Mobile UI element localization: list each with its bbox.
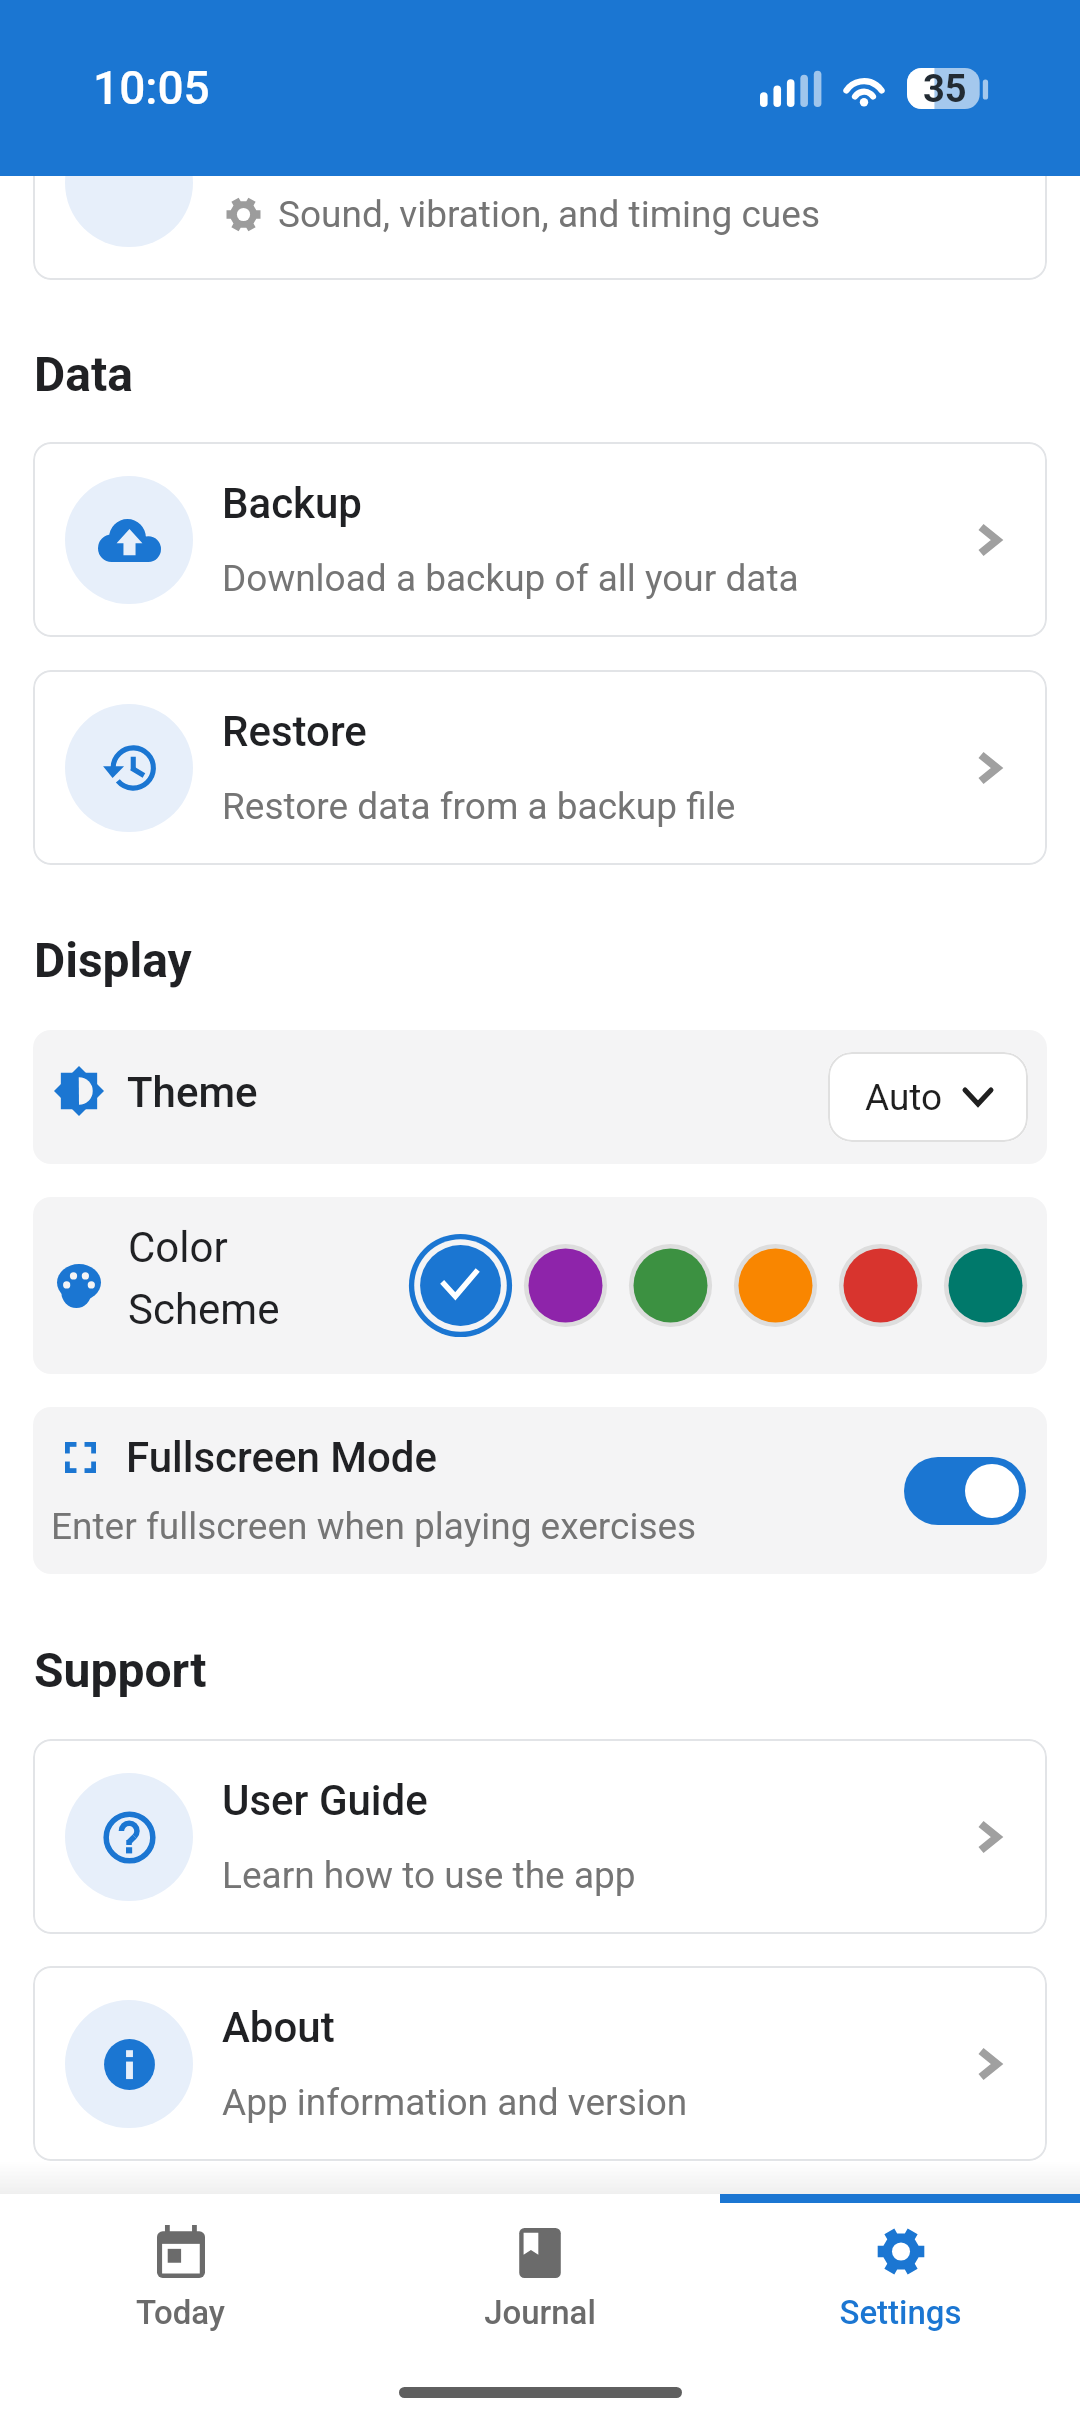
- staticText: Download a backup of all your data: [222, 557, 799, 600]
- staticText: Display: [34, 932, 192, 988]
- button[interactable]: Journal: [360, 2194, 720, 2424]
- button[interactable]: Auto: [828, 1052, 1028, 1142]
- staticText: Journal: [484, 2293, 596, 2332]
- button[interactable]: Fullscreen Mode toggle: [904, 1457, 1026, 1525]
- staticText: 10:05: [93, 61, 210, 115]
- button[interactable]: Fullscreen Mode: [33, 1407, 1047, 1574]
- staticText: Restore: [222, 707, 367, 756]
- staticText: Color: [128, 1223, 228, 1272]
- button[interactable]: Color scheme option: [933, 1233, 1038, 1338]
- button[interactable]: Color scheme option: [828, 1233, 933, 1338]
- button[interactable]: Theme: [33, 1030, 1047, 1164]
- button[interactable]: User Guide: [33, 1739, 1047, 1934]
- staticText: Auto: [865, 1076, 943, 1119]
- staticText: Restore data from a backup file: [222, 785, 736, 828]
- button[interactable]: Color: [33, 1197, 1047, 1374]
- staticText: 35: [923, 67, 967, 108]
- staticText: Scheme: [128, 1285, 280, 1334]
- staticText: Learn how to use the app: [222, 1854, 636, 1897]
- button[interactable]: Color scheme option: [513, 1233, 618, 1338]
- staticText: About: [222, 2003, 335, 2052]
- button[interactable]: Settings: [720, 2194, 1080, 2424]
- button[interactable]: Blue color scheme, selected: [408, 1233, 513, 1338]
- staticText: Support: [34, 1642, 207, 1698]
- staticText: App information and version: [222, 2081, 688, 2124]
- staticText: Settings: [839, 2293, 962, 2332]
- staticText: Sound, vibration, and timing cues: [278, 193, 820, 236]
- button[interactable]: Color scheme option: [723, 1233, 828, 1338]
- staticText: Data: [34, 346, 133, 402]
- staticText: Today: [136, 2293, 225, 2332]
- button[interactable]: Sound, vibration, and timing cues: [33, 85, 1047, 280]
- staticText: Enter fullscreen when playing exercises: [51, 1505, 697, 1548]
- button[interactable]: Today: [0, 2194, 360, 2424]
- staticText: Fullscreen Mode: [126, 1433, 437, 1482]
- button[interactable]: Color scheme option: [618, 1233, 723, 1338]
- button[interactable]: About: [33, 1966, 1047, 2161]
- button[interactable]: Backup: [33, 442, 1047, 637]
- staticText: Backup: [222, 479, 362, 528]
- staticText: Theme: [127, 1068, 258, 1117]
- staticText: User Guide: [222, 1776, 428, 1825]
- button[interactable]: Restore: [33, 670, 1047, 865]
